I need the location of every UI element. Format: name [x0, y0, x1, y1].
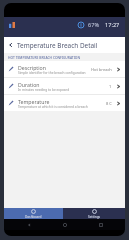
staticText: Dashboard	[25, 215, 42, 219]
button[interactable]: Settings	[63, 208, 125, 219]
staticText: In minutes needing to be exposed	[18, 88, 70, 92]
button[interactable]: Back	[25, 221, 32, 228]
staticText: Temperature at which it is considered a …	[18, 105, 88, 109]
button[interactable]: Dashboard	[4, 208, 63, 219]
button[interactable]: Recents	[97, 221, 104, 228]
button[interactable]: Duration	[4, 78, 125, 94]
staticText: Temperature	[18, 98, 50, 105]
button[interactable]: Back	[4, 37, 17, 53]
button[interactable]: Description	[4, 61, 125, 77]
staticText: Duration	[18, 81, 40, 88]
staticText: 1	[109, 84, 112, 89]
button[interactable]: Home	[61, 221, 68, 228]
staticText: Hot breach	[91, 67, 112, 72]
staticText: 8 C	[106, 101, 112, 106]
staticText: Settings	[88, 215, 101, 219]
staticText: 67%	[88, 21, 100, 29]
staticText: Description	[18, 64, 46, 71]
staticText: Simple identifier for the breach configu…	[18, 71, 86, 75]
staticText: HOT TEMPERATURE BREACH CONFIGURATION	[8, 55, 80, 59]
staticText: 17:27	[105, 21, 120, 29]
staticText: Temperature Breach Detail	[17, 41, 98, 50]
button[interactable]: Temperature	[4, 95, 125, 111]
